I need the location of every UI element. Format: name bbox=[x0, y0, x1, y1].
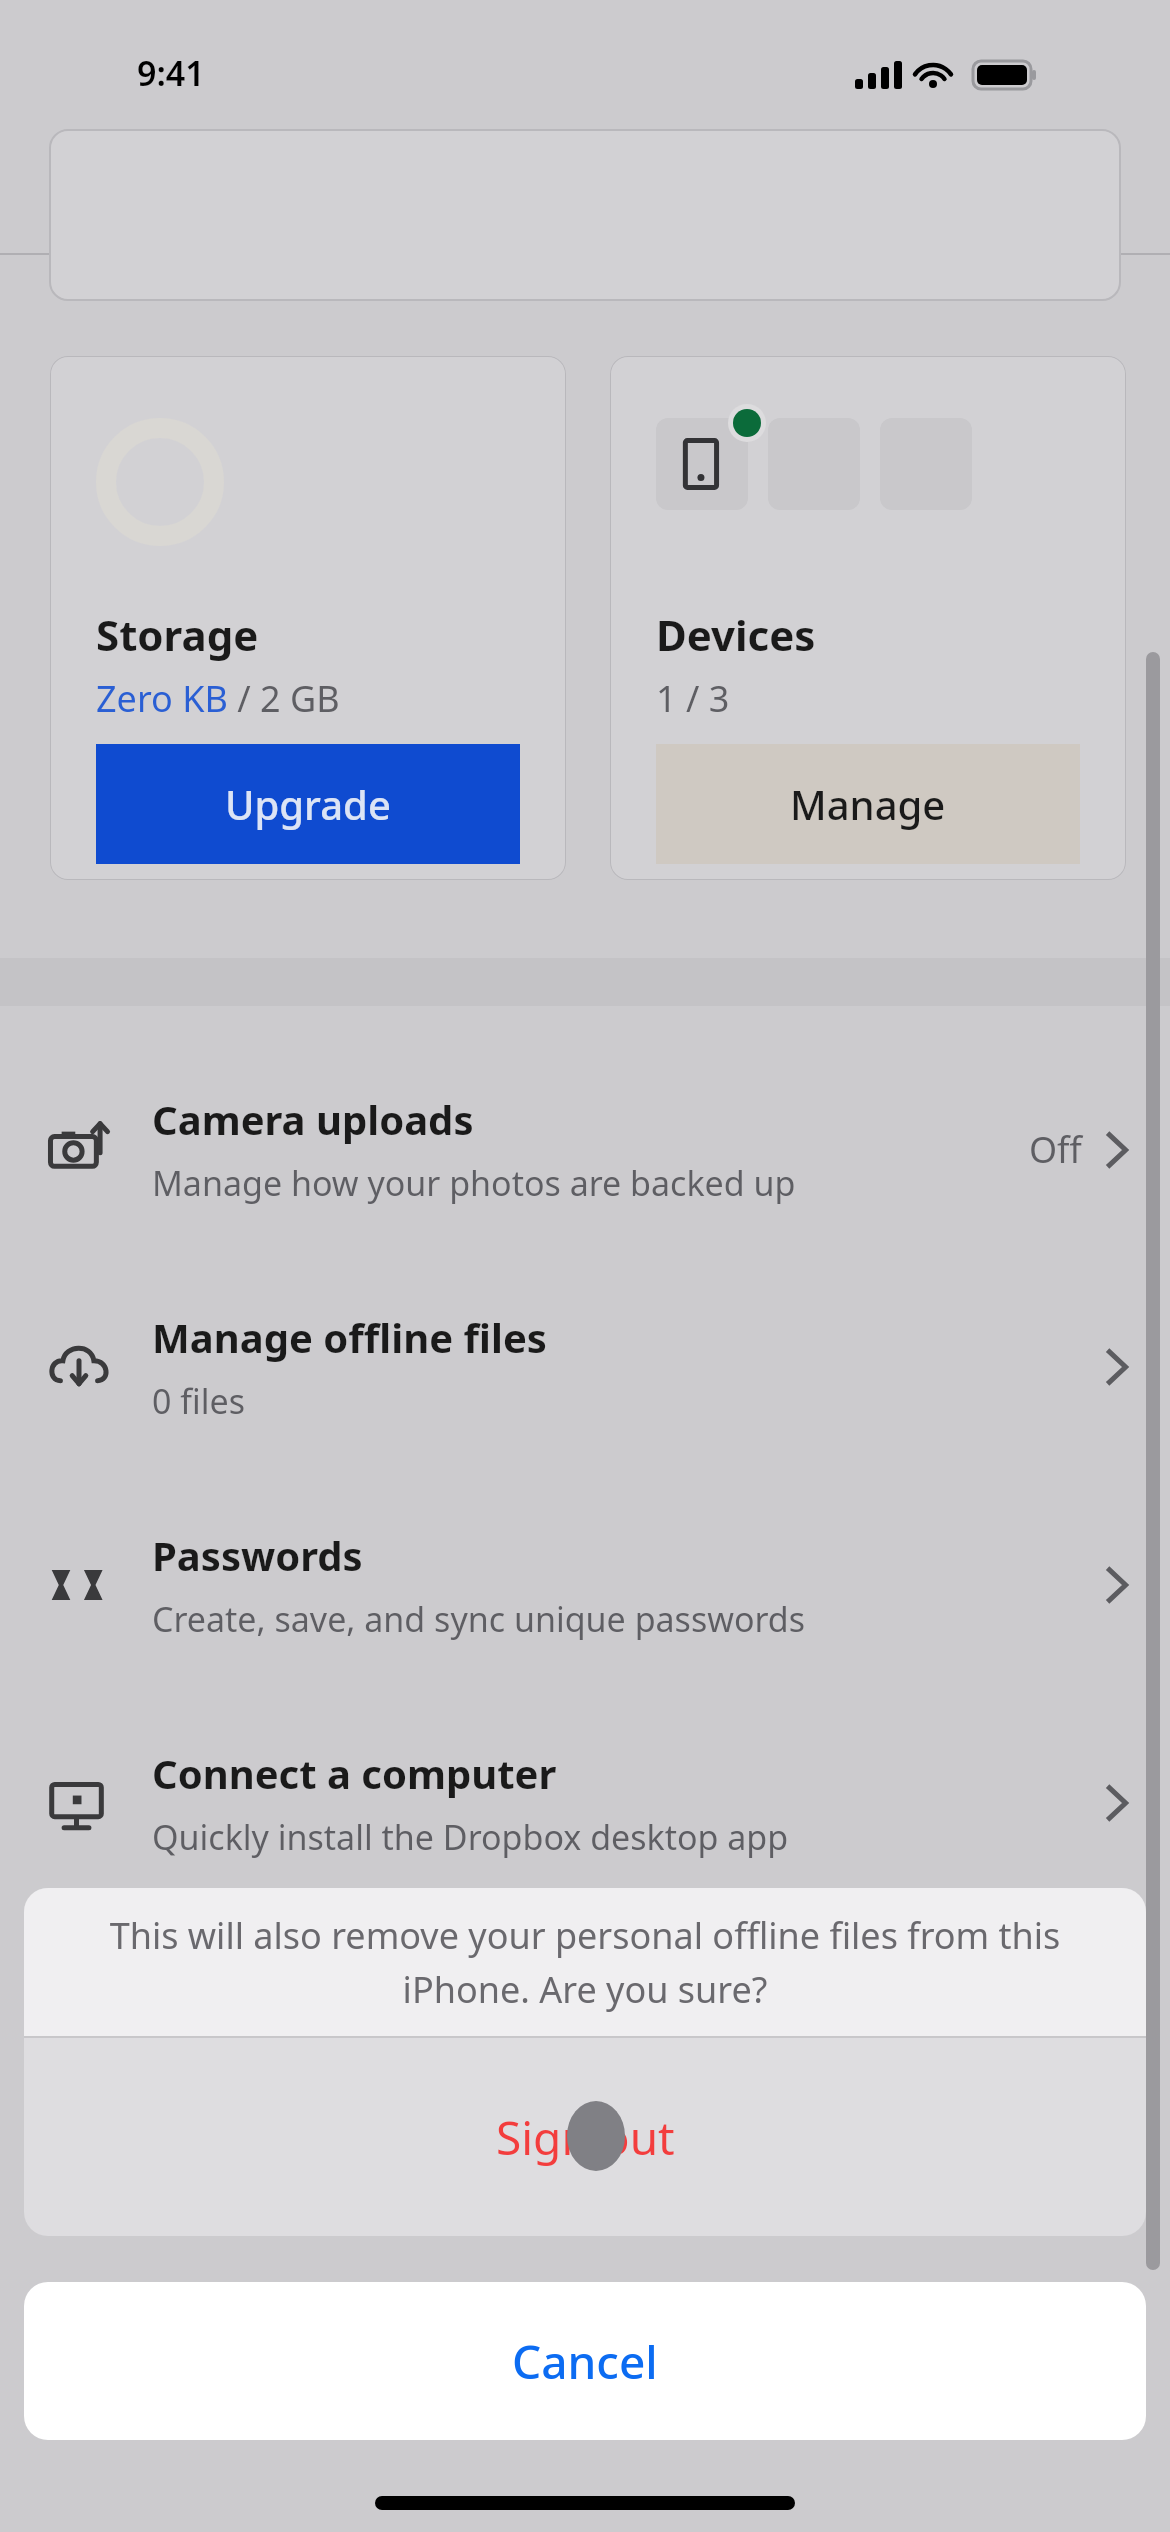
button[interactable]: Camera uploads bbox=[0, 1040, 1170, 1258]
staticText: Cancel bbox=[512, 2330, 658, 2393]
staticText: / 2 GB bbox=[228, 674, 340, 723]
button[interactable]: Sign out bbox=[24, 2038, 1146, 2236]
button[interactable]: Upgrade bbox=[96, 744, 520, 864]
button[interactable]: Devices bbox=[610, 356, 1126, 880]
staticText: Upgrade bbox=[225, 777, 391, 831]
button[interactable]: Connect a computer bbox=[0, 1694, 1170, 1912]
staticText: Devices bbox=[656, 606, 816, 663]
staticText: Storage bbox=[96, 606, 259, 663]
staticText: 9:41 bbox=[137, 50, 205, 96]
button[interactable]: Storage bbox=[50, 356, 566, 880]
staticText: Zero KB bbox=[96, 674, 228, 723]
staticText: Create, save, and sync unique passwords bbox=[152, 1596, 806, 1642]
button[interactable]: Manage bbox=[656, 744, 1080, 864]
staticText: Passwords bbox=[152, 1528, 363, 1582]
staticText: Sign out bbox=[496, 2106, 675, 2169]
staticText: Manage bbox=[790, 777, 946, 831]
staticText: Camera uploads bbox=[152, 1092, 474, 1146]
staticText: Off bbox=[1029, 1125, 1082, 1174]
staticText: Connect a computer bbox=[152, 1746, 557, 1800]
staticText: Manage how your photos are backed up bbox=[152, 1160, 796, 1206]
staticText: Quickly install the Dropbox desktop app bbox=[152, 1814, 789, 1860]
button[interactable]: Passwords bbox=[0, 1476, 1170, 1694]
button[interactable]: Cancel bbox=[24, 2282, 1146, 2440]
button[interactable]: Manage offline files bbox=[0, 1258, 1170, 1476]
staticText: Manage offline files bbox=[152, 1310, 547, 1364]
staticText: 1 / 3 bbox=[656, 674, 730, 723]
staticText: This will also remove your personal offl… bbox=[94, 1911, 1076, 2014]
staticText: 0 files bbox=[152, 1378, 245, 1424]
